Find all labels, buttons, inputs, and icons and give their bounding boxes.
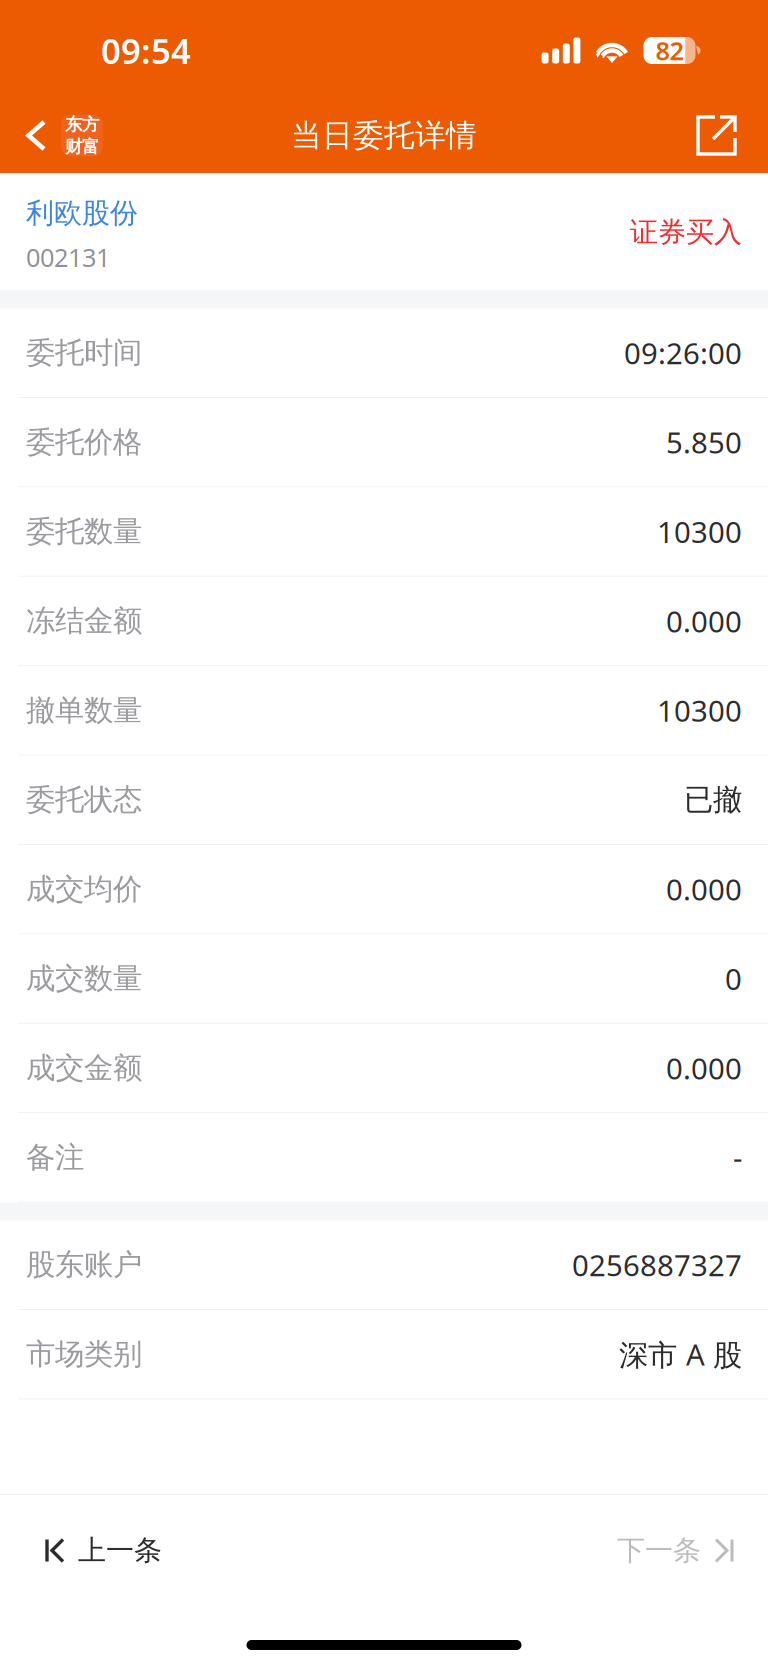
staticText: 委托数量 (26, 514, 142, 550)
button[interactable]: 委托状态 (0, 756, 768, 845)
button[interactable]: 市场类别 (0, 1310, 768, 1399)
staticText: 82 (655, 34, 683, 67)
staticText: 10300 (657, 512, 742, 551)
staticText: 上一条 (78, 1533, 162, 1568)
button[interactable]: 委托价格 (0, 398, 768, 487)
button[interactable]: 冻结金额 (0, 577, 768, 666)
button[interactable]: 成交数量 (0, 934, 768, 1024)
button[interactable]: 委托时间 (0, 309, 768, 398)
staticText: 0256887327 (572, 1245, 742, 1284)
staticText: 0.000 (666, 1048, 742, 1087)
staticText: 财富 (65, 136, 99, 157)
staticText: 0 (725, 959, 742, 998)
staticText: 002131 (26, 240, 110, 274)
button[interactable]: 成交均价 (0, 845, 768, 934)
staticText: 09:54 (101, 27, 191, 73)
staticText: 成交均价 (26, 871, 142, 907)
staticText: 撤单数量 (26, 692, 142, 728)
staticText: 利欧股份 (26, 196, 138, 230)
staticText: 已撤 (684, 782, 742, 818)
staticText: 东方 (65, 114, 99, 135)
staticText: 09:26:00 (624, 333, 742, 372)
button[interactable]: 上一条 (0, 1495, 162, 1606)
staticText: 10300 (657, 691, 742, 730)
staticText: 委托状态 (26, 782, 142, 818)
staticText: 股东账户 (26, 1247, 142, 1283)
staticText: 备注 (26, 1139, 84, 1175)
button[interactable]: 下一条 (617, 1495, 768, 1606)
button[interactable]: 东方 (0, 98, 103, 173)
staticText: 成交金额 (26, 1050, 142, 1086)
staticText: 委托价格 (26, 424, 142, 460)
staticText: 0.000 (666, 601, 742, 640)
staticText: 证券买入 (630, 215, 742, 249)
staticText: 成交数量 (26, 961, 142, 997)
staticText: 0.000 (666, 870, 742, 909)
staticText: 市场类别 (26, 1336, 142, 1372)
staticText: 冻结金额 (26, 603, 142, 639)
button[interactable]: 股东账户 (0, 1221, 768, 1310)
button[interactable]: 委托数量 (0, 487, 768, 577)
button[interactable]: 成交金额 (0, 1024, 768, 1113)
staticText: - (733, 1138, 742, 1177)
staticText: 当日委托详情 (291, 117, 477, 154)
staticText: 委托时间 (26, 335, 142, 371)
staticText: 深市 A 股 (619, 1335, 742, 1374)
staticText: 5.850 (666, 423, 742, 462)
staticText: 下一条 (617, 1533, 701, 1568)
button[interactable]: 撤单数量 (0, 666, 768, 756)
button[interactable]: Share (696, 98, 768, 173)
button[interactable]: 备注 (0, 1113, 768, 1203)
